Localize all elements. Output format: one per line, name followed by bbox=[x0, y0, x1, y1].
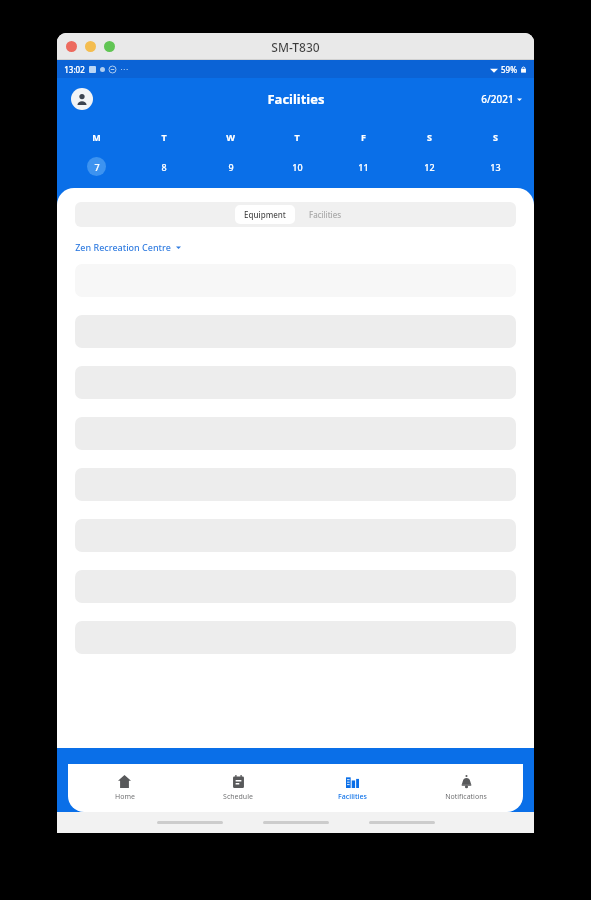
staticText: SM-T830 bbox=[271, 39, 320, 55]
staticText: 8 bbox=[161, 161, 167, 173]
button[interactable]: Facilities bbox=[295, 205, 355, 224]
staticText: 13:02 bbox=[64, 64, 85, 75]
button[interactable]: 10 bbox=[288, 157, 307, 176]
staticText: T bbox=[161, 131, 167, 143]
button[interactable]: Facilities bbox=[295, 764, 409, 812]
staticText: 7 bbox=[94, 161, 100, 173]
staticText: T bbox=[294, 131, 300, 143]
staticText: 13 bbox=[490, 161, 501, 173]
staticText: 59% bbox=[501, 64, 517, 75]
staticText: Notifications bbox=[445, 792, 487, 802]
staticText: Facilities bbox=[267, 90, 325, 108]
staticText: Equipment bbox=[244, 209, 286, 220]
button[interactable]: 9 bbox=[221, 157, 240, 176]
button[interactable]: 13 bbox=[486, 157, 505, 176]
staticText: Facilities bbox=[309, 209, 341, 220]
button[interactable]: Zen Recreation Centre bbox=[75, 241, 181, 253]
staticText: S bbox=[493, 131, 498, 143]
staticText: F bbox=[361, 131, 366, 143]
button[interactable]: 11 bbox=[354, 157, 373, 176]
button[interactable]: 8 bbox=[154, 157, 173, 176]
button[interactable]: Profile bbox=[71, 88, 93, 110]
button[interactable]: Home bbox=[68, 764, 181, 812]
staticText: 11 bbox=[358, 161, 369, 173]
staticText: Home bbox=[115, 792, 135, 802]
button[interactable]: 12 bbox=[420, 157, 439, 176]
button[interactable]: Schedule bbox=[181, 764, 295, 812]
staticText: 12 bbox=[424, 161, 435, 173]
button[interactable]: Notifications bbox=[409, 764, 523, 812]
staticText: ⋯ bbox=[120, 65, 128, 74]
button[interactable]: 7 bbox=[87, 157, 106, 176]
staticText: S bbox=[427, 131, 432, 143]
button[interactable]: Equipment bbox=[235, 205, 295, 224]
staticText: M bbox=[92, 131, 101, 143]
staticText: Facilities bbox=[338, 792, 367, 802]
staticText: Zen Recreation Centre bbox=[75, 241, 171, 253]
staticText: W bbox=[226, 131, 235, 143]
staticText: 10 bbox=[292, 161, 303, 173]
staticText: Schedule bbox=[223, 792, 253, 802]
button[interactable]: 6/2021 bbox=[481, 92, 522, 106]
staticText: 9 bbox=[228, 161, 234, 173]
staticText: 6/2021 bbox=[481, 92, 514, 106]
